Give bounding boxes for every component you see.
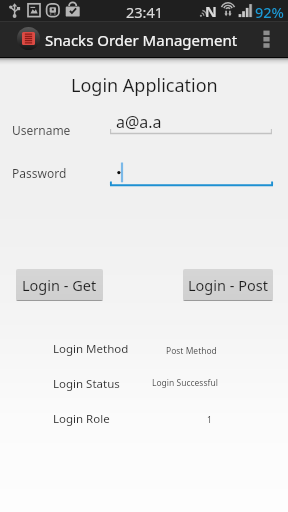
staticText: Login Application bbox=[71, 73, 218, 98]
staticText: a@a.a bbox=[116, 111, 162, 133]
staticText: Password bbox=[12, 165, 67, 181]
staticText: Login Method bbox=[53, 341, 129, 357]
button[interactable]: Login - Post bbox=[183, 269, 273, 301]
staticText: 92% bbox=[255, 2, 284, 22]
staticText: Login - Post bbox=[188, 275, 268, 295]
staticText: Login Successful bbox=[152, 377, 218, 389]
staticText: Post Method bbox=[166, 345, 217, 357]
button[interactable]: More options bbox=[248, 21, 284, 57]
staticText: Username bbox=[12, 122, 71, 138]
staticText: 1 bbox=[207, 414, 212, 426]
staticText: Login Status bbox=[53, 376, 120, 392]
staticText: Snacks Order Management bbox=[45, 30, 238, 50]
staticText: 23:41 bbox=[126, 2, 164, 22]
staticText: N bbox=[205, 1, 217, 21]
staticText: Login - Get bbox=[22, 275, 97, 295]
button[interactable]: Login - Get bbox=[16, 269, 103, 301]
staticText: Login Role bbox=[53, 411, 110, 427]
